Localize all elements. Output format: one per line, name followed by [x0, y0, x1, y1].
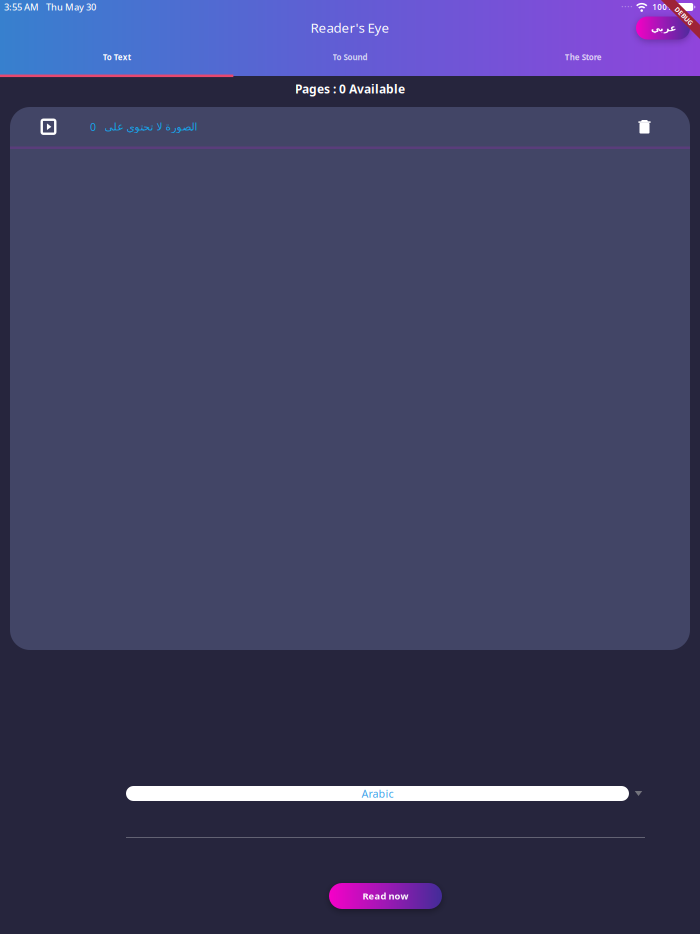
staticText: The Store: [565, 52, 602, 62]
staticText: Read now: [362, 890, 408, 902]
staticText: الصورة لا تحتوي على: [104, 121, 197, 133]
staticText: Thu May 30: [46, 1, 96, 13]
button[interactable]: Choose language: [631, 786, 646, 801]
staticText: 0: [90, 120, 96, 134]
staticText: 3:55 AM: [4, 1, 39, 13]
button[interactable]: عربي: [636, 16, 690, 39]
staticText: To Text: [103, 52, 131, 62]
staticText: 100%: [652, 2, 674, 12]
button[interactable]: To Text: [0, 45, 233, 76]
staticText: عربي: [650, 23, 675, 33]
button[interactable]: Delete page: [630, 113, 659, 140]
button[interactable]: Read now: [329, 883, 442, 909]
button[interactable]: Arabic: [126, 786, 629, 801]
staticText: To Sound: [332, 52, 367, 62]
staticText: Arabic: [361, 786, 393, 801]
button[interactable]: Play page: [35, 113, 62, 140]
button[interactable]: The Store: [467, 45, 700, 76]
staticText: • • • •: [621, 3, 632, 11]
button[interactable]: To Sound: [233, 45, 467, 76]
staticText: DEBUG: [672, 12, 695, 20]
staticText: Pages : 0 Available: [295, 81, 405, 97]
staticText: Reader's Eye: [310, 19, 389, 36]
